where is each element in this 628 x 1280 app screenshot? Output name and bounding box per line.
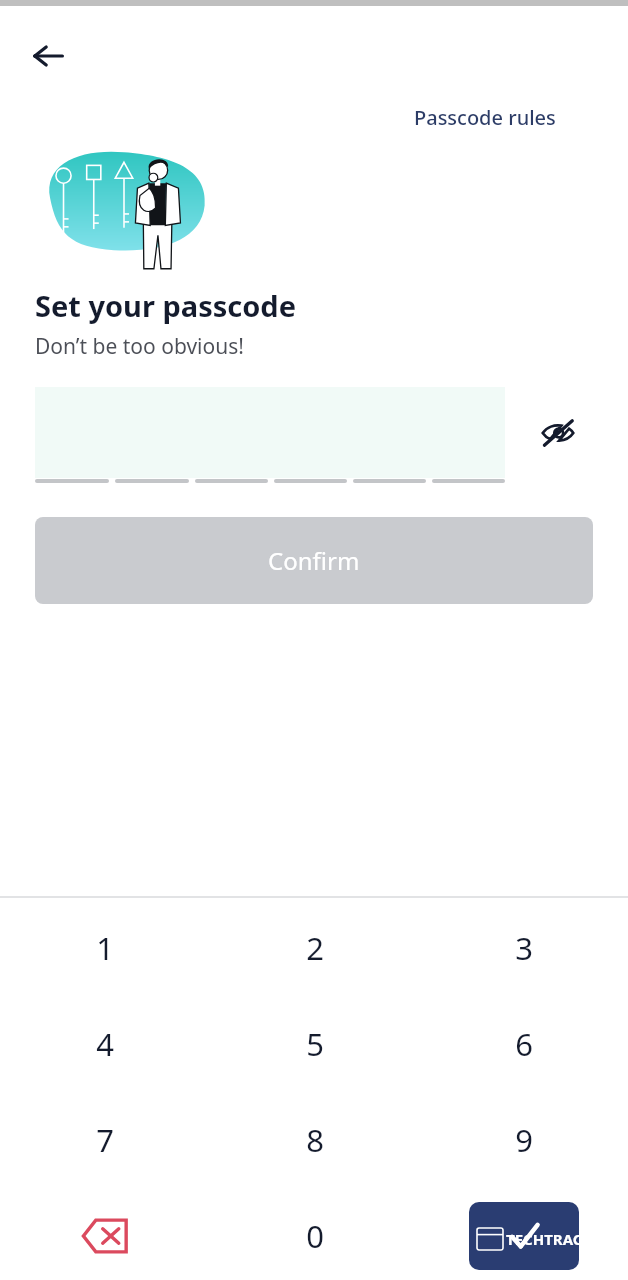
staticText: 3 xyxy=(515,927,533,969)
staticText: TECHTRACKER xyxy=(506,1229,611,1249)
staticText: 4 xyxy=(96,1023,114,1065)
staticText: Confirm xyxy=(268,544,360,577)
button[interactable]: 2 xyxy=(210,900,419,996)
button[interactable]: Hide passcode xyxy=(533,408,583,458)
button[interactable]: Back xyxy=(22,30,74,82)
staticText: 9 xyxy=(515,1119,533,1161)
button[interactable]: 5 xyxy=(210,996,419,1092)
staticText: Passcode rules xyxy=(414,104,556,131)
button[interactable]: Confirm xyxy=(35,517,593,604)
button[interactable]: 1 xyxy=(0,900,210,996)
button[interactable]: 8 xyxy=(210,1092,419,1188)
button[interactable]: Passcode rules xyxy=(408,98,562,137)
button[interactable]: 4 xyxy=(0,996,210,1092)
button[interactable]: 9 xyxy=(419,1092,628,1188)
staticText: 5 xyxy=(306,1023,324,1065)
staticText: 1 xyxy=(96,927,114,969)
button[interactable]: 3 xyxy=(419,900,628,996)
staticText: 8 xyxy=(306,1119,324,1161)
button[interactable]: 0 xyxy=(210,1188,419,1280)
button[interactable]: Submit passcode xyxy=(469,1202,579,1270)
button[interactable]: 7 xyxy=(0,1092,210,1188)
staticText: 0 xyxy=(306,1215,324,1257)
staticText: 7 xyxy=(96,1119,114,1161)
button[interactable]: 6 xyxy=(419,996,628,1092)
button[interactable]: Delete xyxy=(0,1188,210,1280)
staticText: 2 xyxy=(306,927,324,969)
staticText: Set your passcode xyxy=(35,286,297,325)
staticText: 6 xyxy=(515,1023,533,1065)
staticText: Don’t be too obvious! xyxy=(35,332,244,361)
